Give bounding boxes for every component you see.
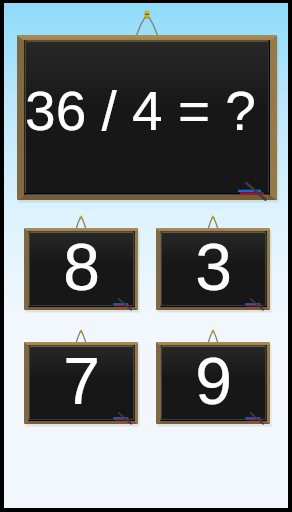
- staticText: 36 / 4 = ?: [25, 80, 256, 141]
- staticText: 7: [63, 344, 100, 418]
- staticText: 8: [63, 230, 100, 304]
- staticText: 9: [195, 344, 232, 418]
- button[interactable]: Answer 9: [156, 322, 270, 424]
- button[interactable]: Question 36 divided by 4: [17, 3, 277, 200]
- button[interactable]: Answer 7: [24, 322, 138, 424]
- staticText: 3: [195, 230, 232, 304]
- button[interactable]: Answer 3: [156, 208, 270, 310]
- button[interactable]: Answer 8: [24, 208, 138, 310]
